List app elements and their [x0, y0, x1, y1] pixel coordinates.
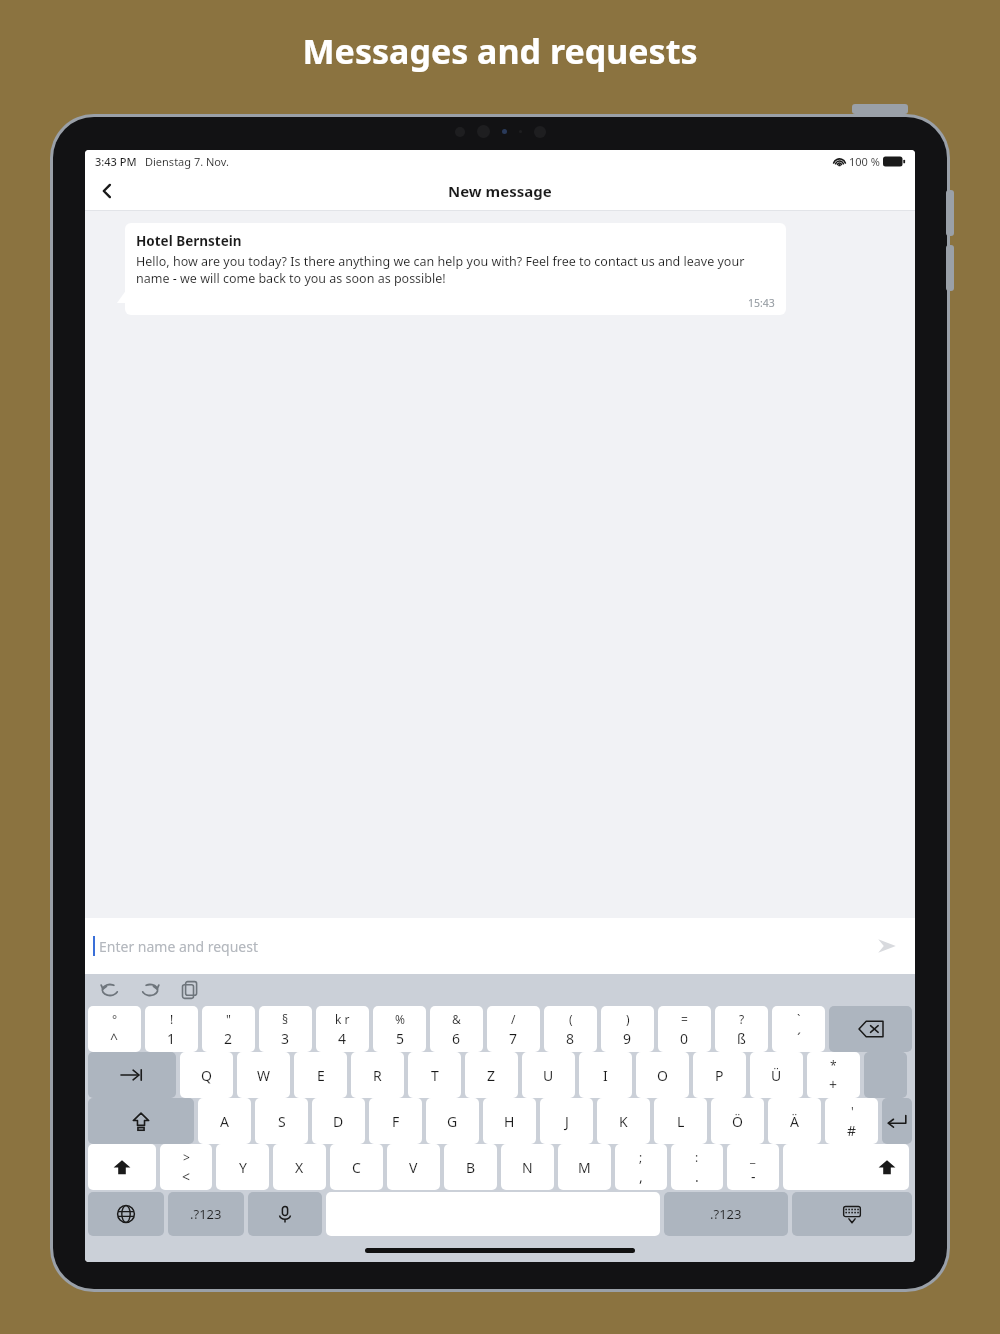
button[interactable]: Shift: [783, 1144, 909, 1190]
staticText: Dienstag 7. Nov.: [145, 154, 229, 169]
staticText: L: [677, 1112, 685, 1131]
staticText: 6: [452, 1029, 461, 1048]
button[interactable]: Backspace: [829, 1006, 912, 1052]
button[interactable]: Return: [882, 1098, 912, 1144]
button[interactable]: Caps lock: [88, 1098, 194, 1144]
button[interactable]: _: [727, 1144, 779, 1190]
staticText: 9: [623, 1029, 632, 1048]
button[interactable]: O: [636, 1052, 689, 1098]
staticText: :: [695, 1149, 699, 1165]
button[interactable]: Y: [216, 1144, 269, 1190]
staticText: B: [466, 1158, 476, 1177]
staticText: .: [695, 1167, 699, 1186]
button[interactable]: (: [544, 1006, 597, 1052]
button[interactable]: °: [88, 1006, 141, 1052]
staticText: ': [851, 1103, 854, 1119]
button[interactable]: F: [369, 1098, 422, 1144]
button[interactable]: k r: [316, 1006, 369, 1052]
staticText: %: [395, 1011, 405, 1027]
staticText: W: [257, 1066, 271, 1085]
staticText: P: [715, 1066, 724, 1085]
button[interactable]: X: [273, 1144, 326, 1190]
button[interactable]: Ä: [768, 1098, 821, 1144]
button[interactable]: Language: [88, 1192, 164, 1236]
staticText: +: [829, 1075, 838, 1094]
button[interactable]: .?123: [168, 1192, 244, 1236]
staticText: 3: [281, 1029, 290, 1048]
button[interactable]: Z: [465, 1052, 518, 1098]
button[interactable]: Hotel Bernstein: [136, 232, 775, 310]
button[interactable]: K: [597, 1098, 650, 1144]
button[interactable]: Undo: [99, 979, 121, 1001]
button[interactable]: /: [487, 1006, 540, 1052]
staticText: !: [170, 1011, 174, 1027]
button[interactable]: =: [658, 1006, 711, 1052]
button[interactable]: >: [160, 1144, 212, 1190]
button[interactable]: J: [540, 1098, 593, 1144]
staticText: Q: [201, 1066, 212, 1085]
staticText: 1: [167, 1029, 176, 1048]
button[interactable]: R: [351, 1052, 404, 1098]
button[interactable]: U: [522, 1052, 575, 1098]
button[interactable]: I: [579, 1052, 632, 1098]
button[interactable]: ': [825, 1098, 878, 1144]
button[interactable]: Hide keyboard: [792, 1192, 912, 1236]
button[interactable]: ): [601, 1006, 654, 1052]
button[interactable]: Paste: [179, 979, 201, 1001]
button[interactable]: `: [772, 1006, 825, 1052]
button[interactable]: Ö: [711, 1098, 764, 1144]
button[interactable]: Redo: [139, 979, 161, 1001]
button[interactable]: Ü: [750, 1052, 803, 1098]
staticText: M: [578, 1158, 591, 1177]
staticText: T: [431, 1066, 439, 1085]
button[interactable]: Shift: [88, 1144, 156, 1190]
staticText: C: [352, 1158, 361, 1177]
button[interactable]: §: [259, 1006, 312, 1052]
staticText: G: [447, 1112, 458, 1131]
button[interactable]: D: [312, 1098, 365, 1144]
button[interactable]: V: [387, 1144, 440, 1190]
button[interactable]: .?123: [664, 1192, 788, 1236]
button[interactable]: P: [693, 1052, 746, 1098]
button[interactable]: Back: [85, 172, 129, 210]
button[interactable]: W: [237, 1052, 290, 1098]
button[interactable]: Send: [867, 926, 907, 966]
staticText: *: [830, 1057, 837, 1073]
button[interactable]: :: [671, 1144, 723, 1190]
button[interactable]: S: [255, 1098, 308, 1144]
staticText: 7: [509, 1029, 518, 1048]
button[interactable]: Dictate: [248, 1192, 322, 1236]
staticText: E: [317, 1066, 325, 1085]
button[interactable]: N: [501, 1144, 554, 1190]
staticText: 100 %: [849, 154, 880, 169]
button[interactable]: B: [444, 1144, 497, 1190]
staticText: ): [626, 1011, 630, 1027]
button[interactable]: Q: [180, 1052, 233, 1098]
staticText: ;: [639, 1149, 643, 1165]
button[interactable]: C: [330, 1144, 383, 1190]
button[interactable]: Tab: [88, 1052, 176, 1098]
button[interactable]: %: [373, 1006, 426, 1052]
button[interactable]: T: [408, 1052, 461, 1098]
staticText: 15:43: [748, 296, 775, 310]
staticText: ^: [110, 1029, 119, 1048]
staticText: O: [657, 1066, 668, 1085]
button[interactable]: L: [654, 1098, 707, 1144]
button[interactable]: ;: [615, 1144, 667, 1190]
staticText: N: [522, 1158, 533, 1177]
button[interactable]: H: [483, 1098, 536, 1144]
button[interactable]: !: [145, 1006, 198, 1052]
button[interactable]: M: [558, 1144, 611, 1190]
button[interactable]: G: [426, 1098, 479, 1144]
button[interactable]: &: [430, 1006, 483, 1052]
button[interactable]: A: [198, 1098, 251, 1144]
staticText: Enter name and request: [99, 937, 259, 956]
staticText: -: [751, 1167, 756, 1186]
staticText: ß: [737, 1029, 746, 1048]
button[interactable]: *: [807, 1052, 860, 1098]
button[interactable]: ?: [715, 1006, 768, 1052]
button[interactable]: ": [202, 1006, 255, 1052]
button[interactable]: E: [294, 1052, 347, 1098]
